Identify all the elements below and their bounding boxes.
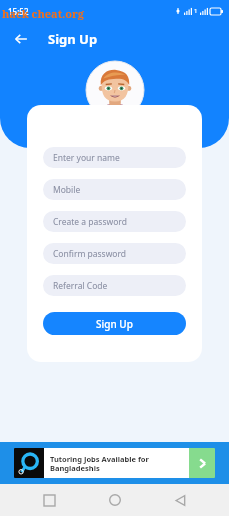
button[interactable]: Create a password — [43, 211, 186, 232]
button[interactable]: Tutoring Jobs Available for Bangladeshis — [0, 442, 229, 484]
button[interactable]: Enter your name — [43, 147, 186, 168]
staticText: Sign Up — [96, 317, 133, 331]
button[interactable]: Recents — [33, 484, 65, 516]
staticText: hack cheat.org — [2, 6, 84, 21]
button[interactable]: Back — [8, 26, 34, 52]
staticText: 1 — [194, 7, 198, 15]
staticText: Mobile — [53, 184, 81, 196]
staticText: Referral Code — [53, 280, 108, 292]
staticText: Sign Up — [48, 30, 98, 48]
button[interactable]: Confirm password — [43, 243, 186, 264]
button[interactable]: Open ad — [189, 448, 215, 478]
staticText: Enter your name — [53, 152, 120, 164]
staticText: 15:52 — [8, 6, 29, 17]
button[interactable]: Mobile — [43, 179, 186, 200]
staticText: Create a password — [53, 216, 127, 228]
button[interactable]: Home — [99, 484, 131, 516]
button[interactable]: Sign Up — [43, 312, 186, 335]
button[interactable]: Back — [164, 484, 196, 516]
button[interactable]: Referral Code — [43, 275, 186, 296]
staticText: Tutoring Jobs Available for Bangladeshis — [50, 454, 149, 473]
staticText: Confirm password — [53, 248, 127, 260]
